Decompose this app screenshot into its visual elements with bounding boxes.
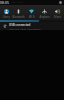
- staticText: 08:05: [0, 0, 9, 5]
- button[interactable]: Bluetooth: [12, 5, 25, 20]
- button[interactable]: Wi-Fi: [25, 5, 38, 20]
- button[interactable]: User: [0, 5, 12, 20]
- button[interactable]: USB connected: [0, 22, 64, 30]
- staticText: Wi-Fi: [29, 15, 35, 19]
- staticText: Mon, Feb 3: [11, 1, 23, 4]
- staticText: Silent: [54, 15, 61, 19]
- staticText: Touch for other USB options: [9, 27, 41, 30]
- button[interactable]: Sound: [51, 5, 64, 20]
- button[interactable]: Settings: [58, 0, 63, 5]
- staticText: Airplane: [39, 15, 50, 19]
- staticText: Gerry: [3, 15, 10, 19]
- button[interactable]: Airplane mode: [38, 5, 51, 20]
- staticText: Bluetooth: [12, 15, 25, 19]
- staticText: USB connected: [9, 23, 31, 27]
